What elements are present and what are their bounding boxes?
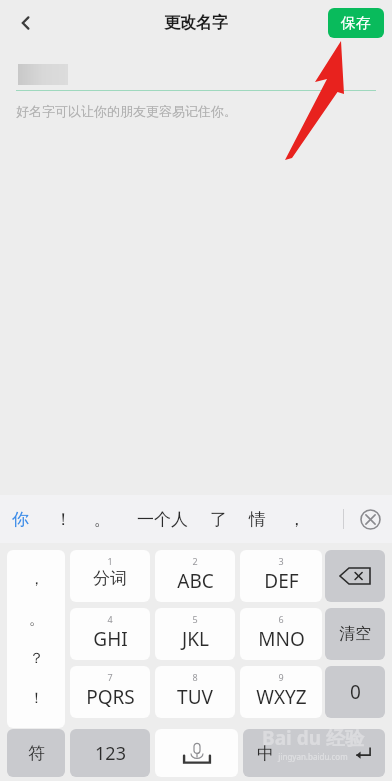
- staticText: 7: [107, 671, 113, 683]
- staticText: 情: [249, 509, 266, 530]
- staticText: 分词: [93, 568, 127, 589]
- staticText: 一个人: [137, 509, 188, 530]
- staticText: MNO: [258, 626, 305, 652]
- staticText: 9: [278, 671, 284, 683]
- staticText: 中: [257, 743, 274, 764]
- staticText: 1: [107, 555, 113, 567]
- staticText: 更改名字: [164, 13, 228, 33]
- button[interactable]: 8: [155, 666, 235, 718]
- button[interactable]: 0: [325, 666, 385, 718]
- staticText: ABC: [177, 568, 214, 594]
- staticText: 4: [107, 613, 113, 625]
- staticText: 符: [28, 743, 45, 764]
- button[interactable]: 5: [155, 608, 235, 660]
- staticText: ？: [29, 649, 44, 668]
- staticText: 保存: [341, 14, 371, 33]
- button[interactable]: 清空: [325, 608, 385, 660]
- staticText: TUV: [177, 684, 213, 710]
- staticText: 了: [210, 509, 227, 530]
- button[interactable]: 2: [155, 550, 235, 602]
- staticText: ，: [29, 570, 44, 589]
- staticText: 6: [278, 613, 284, 625]
- staticText: 8: [192, 671, 198, 683]
- staticText: jingyan.baidu.com: [278, 751, 348, 762]
- button[interactable]: 3: [240, 550, 322, 602]
- button[interactable]: 9: [240, 666, 322, 718]
- staticText: 。: [29, 610, 44, 629]
- button[interactable]: Space: [155, 729, 238, 777]
- button[interactable]: Delete: [325, 550, 385, 602]
- button[interactable]: 1: [70, 550, 150, 602]
- staticText: ！: [55, 509, 72, 530]
- staticText: ，: [288, 509, 305, 530]
- staticText: 5: [192, 613, 198, 625]
- staticText: 。: [94, 509, 111, 530]
- staticText: GHI: [93, 626, 128, 652]
- staticText: PQRS: [86, 684, 135, 710]
- button[interactable]: ！: [53, 505, 74, 534]
- button[interactable]: 保存: [328, 8, 384, 38]
- button[interactable]: 123: [70, 729, 150, 777]
- staticText: 你: [12, 509, 29, 530]
- staticText: 3: [278, 555, 284, 567]
- button[interactable]: ，: [286, 505, 307, 534]
- staticText: WXYZ: [256, 684, 307, 710]
- staticText: DEF: [264, 568, 299, 594]
- button[interactable]: 。: [92, 505, 113, 534]
- button[interactable]: 符: [7, 729, 65, 777]
- staticText: ！: [29, 689, 44, 708]
- staticText: 好名字可以让你的朋友更容易记住你。: [16, 103, 237, 119]
- staticText: 123: [95, 741, 126, 766]
- button[interactable]: ，: [7, 550, 65, 728]
- button[interactable]: 一个人: [135, 505, 190, 534]
- staticText: 2: [192, 555, 198, 567]
- staticText: JKL: [182, 626, 209, 652]
- button[interactable]: 4: [70, 608, 150, 660]
- button[interactable]: 你: [10, 505, 31, 534]
- staticText: 0: [350, 679, 361, 705]
- button[interactable]: Close keyboard: [348, 495, 392, 543]
- button[interactable]: 7: [70, 666, 150, 718]
- button[interactable]: Back: [6, 3, 46, 43]
- button[interactable]: 6: [240, 608, 322, 660]
- staticText: Bai du 经验: [262, 725, 364, 751]
- button[interactable]: 情: [247, 505, 268, 534]
- staticText: 清空: [339, 624, 371, 644]
- button[interactable]: Enter: [243, 729, 385, 777]
- button[interactable]: 了: [208, 505, 229, 534]
